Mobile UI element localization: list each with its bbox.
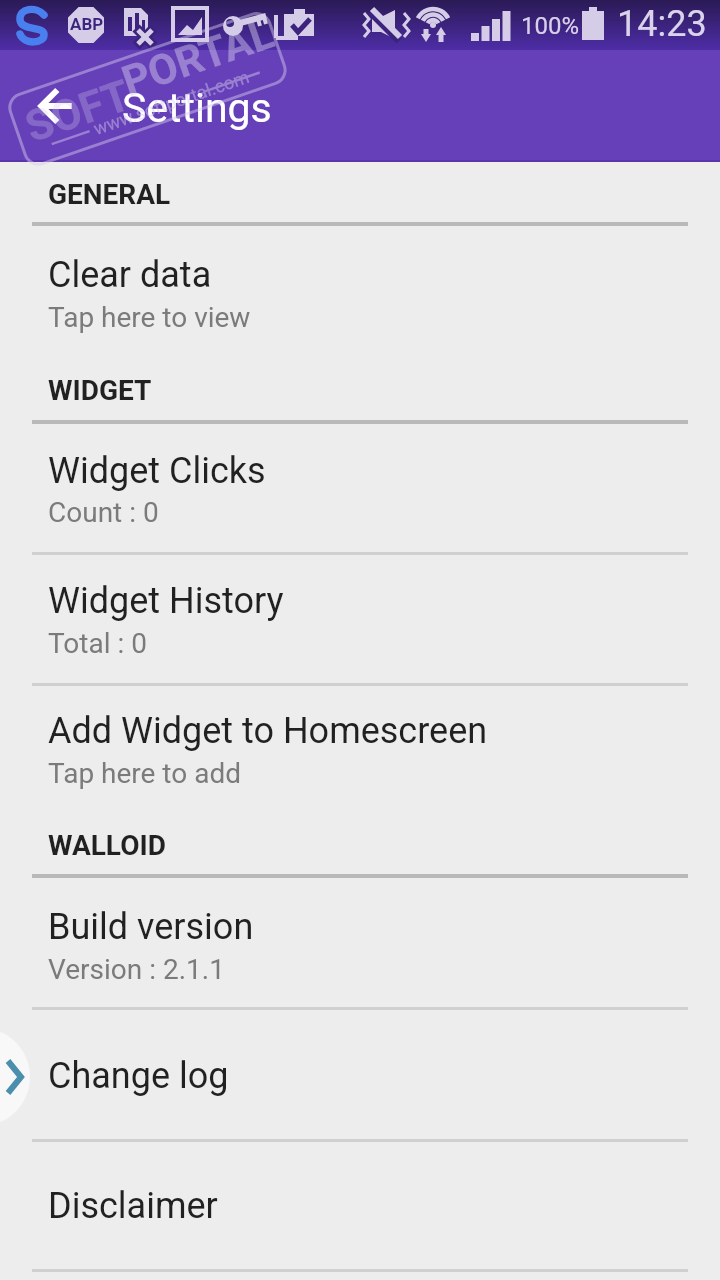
button[interactable]: Add Widget to Homescreen bbox=[0, 686, 720, 829]
staticText: 100% bbox=[521, 12, 580, 40]
staticText: Total : 0 bbox=[48, 627, 147, 660]
staticText: WIDGET bbox=[48, 374, 152, 407]
staticText: Build version bbox=[48, 906, 254, 948]
staticText: WALLOID bbox=[48, 829, 166, 862]
staticText: www.softportal.com bbox=[91, 66, 253, 139]
staticText: Count : 0 bbox=[48, 496, 159, 529]
staticText: Add Widget to Homescreen bbox=[48, 710, 488, 752]
staticText: Widget History bbox=[48, 580, 284, 622]
button[interactable]: Build version bbox=[0, 878, 720, 1007]
button[interactable]: Clear data bbox=[0, 226, 720, 374]
staticText: Version : 2.1.1 bbox=[48, 953, 225, 986]
staticText: GENERAL bbox=[48, 178, 171, 211]
staticText: Change log bbox=[48, 1055, 229, 1097]
button[interactable]: Widget Clicks bbox=[0, 424, 720, 552]
button[interactable]: Disclaimer bbox=[0, 1142, 720, 1269]
staticText: PORTAL bbox=[116, 9, 280, 106]
staticText: Settings bbox=[122, 84, 272, 132]
staticText: ABP bbox=[70, 14, 104, 34]
staticText: Disclaimer bbox=[48, 1185, 218, 1227]
staticText: Widget Clicks bbox=[48, 450, 266, 492]
button[interactable]: Widget History bbox=[0, 555, 720, 683]
button[interactable]: Navigate up bbox=[14, 50, 110, 162]
staticText: SOFT bbox=[19, 70, 136, 152]
staticText: Tap here to view bbox=[48, 301, 251, 334]
button[interactable]: Change log bbox=[0, 1010, 720, 1139]
staticText: Clear data bbox=[48, 254, 212, 296]
button[interactable]: Open navigation bbox=[0, 1028, 30, 1126]
staticText: Tap here to add bbox=[48, 757, 241, 790]
staticText: 14:23 bbox=[617, 3, 707, 45]
